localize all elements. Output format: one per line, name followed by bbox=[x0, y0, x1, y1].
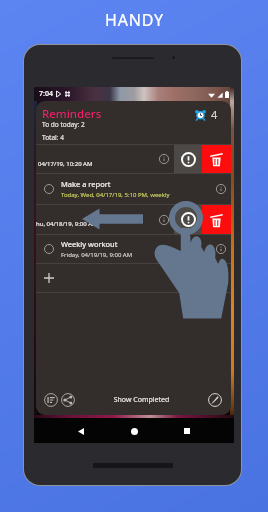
button[interactable]: hu, 04/18/19, 9:00 AM bbox=[36, 205, 174, 234]
staticText: 4 bbox=[211, 107, 218, 122]
button[interactable]: Home bbox=[124, 421, 144, 441]
button[interactable]: Back bbox=[71, 421, 91, 441]
staticText: To do today: 2 bbox=[42, 120, 85, 129]
staticText: Reminders bbox=[42, 106, 102, 122]
button[interactable]: 04/17/19, 10:20 AM bbox=[36, 145, 174, 173]
staticText: 7:04 bbox=[39, 89, 53, 99]
button[interactable]: Priority bbox=[174, 205, 202, 234]
staticText: 04/17/19, 10:20 AM bbox=[38, 160, 93, 168]
button[interactable]: Delete bbox=[202, 205, 231, 234]
button[interactable]: Make a report bbox=[36, 174, 231, 204]
button[interactable]: Edit bbox=[208, 393, 222, 407]
button[interactable]: Recents bbox=[177, 421, 197, 441]
button[interactable]: Add reminder bbox=[36, 264, 231, 292]
button[interactable]: Sort bbox=[44, 393, 58, 407]
button[interactable]: Priority bbox=[174, 145, 202, 173]
staticText: Make a report bbox=[61, 179, 111, 189]
button[interactable]: Share bbox=[61, 393, 75, 407]
staticText: Today, Wed, 04/17/19, 5:10 PM, weekly bbox=[61, 191, 170, 199]
staticText: Total: 4 bbox=[42, 133, 64, 142]
staticText: Show Completed bbox=[75, 395, 208, 405]
staticText: Weekly workout bbox=[61, 239, 118, 249]
staticText: HANDY bbox=[105, 9, 164, 31]
staticText: Friday, 04/19/19, 9:00 AM bbox=[61, 251, 133, 259]
staticText: hu, 04/18/19, 9:00 AM bbox=[36, 220, 98, 228]
button[interactable]: Delete bbox=[202, 145, 231, 173]
button[interactable]: Weekly workout bbox=[36, 235, 231, 263]
